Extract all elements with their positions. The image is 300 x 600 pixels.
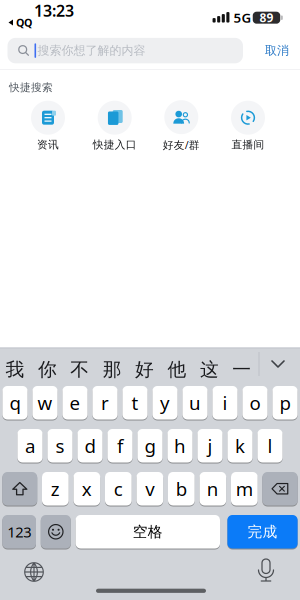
button[interactable]: 切换键盘: [23, 561, 45, 583]
button[interactable]: 他: [162, 354, 192, 384]
staticText: k: [235, 433, 245, 458]
button[interactable]: 返回 QQ: [5, 17, 35, 28]
button[interactable]: x: [73, 471, 100, 506]
button[interactable]: 你: [32, 354, 62, 384]
staticText: b: [176, 476, 187, 501]
staticText: 取消: [265, 43, 289, 58]
button[interactable]: 取消: [257, 40, 297, 62]
staticText: e: [69, 390, 80, 415]
button[interactable]: 这: [194, 354, 224, 384]
button[interactable]: r: [92, 385, 118, 420]
button[interactable]: n: [199, 471, 226, 506]
button[interactable]: p: [272, 385, 298, 420]
staticText: j: [207, 433, 212, 458]
staticText: o: [249, 390, 260, 415]
staticText: 你: [38, 358, 57, 381]
button[interactable]: d: [77, 428, 103, 463]
button[interactable]: l: [257, 428, 283, 463]
staticText: 一: [232, 358, 251, 381]
button[interactable]: a: [17, 428, 43, 463]
button[interactable]: 搜索: [7, 38, 243, 63]
staticText: 那: [103, 358, 122, 381]
button[interactable]: 空格: [76, 514, 220, 549]
button[interactable]: z: [42, 471, 69, 506]
staticText: m: [236, 476, 253, 501]
button[interactable]: 不: [65, 354, 95, 384]
button[interactable]: 听写: [254, 558, 277, 582]
staticText: q: [9, 390, 20, 415]
button[interactable]: b: [168, 471, 195, 506]
staticText: u: [189, 390, 201, 415]
button[interactable]: 表情: [41, 514, 71, 549]
staticText: r: [101, 390, 109, 415]
button[interactable]: Shift: [2, 471, 37, 506]
staticText: 不: [70, 358, 89, 381]
button[interactable]: k: [227, 428, 253, 463]
button[interactable]: t: [122, 385, 148, 420]
button[interactable]: 好友/群: [148, 101, 214, 150]
button[interactable]: 一: [227, 354, 257, 384]
button[interactable]: o: [242, 385, 268, 420]
staticText: f: [117, 433, 123, 458]
button[interactable]: e: [62, 385, 88, 420]
staticText: z: [51, 476, 60, 501]
button[interactable]: 123: [2, 514, 36, 549]
staticText: s: [55, 433, 64, 458]
button[interactable]: h: [167, 428, 193, 463]
button[interactable]: 删除: [262, 471, 298, 506]
staticText: 我: [5, 358, 24, 381]
staticText: c: [114, 476, 123, 501]
staticText: 资讯: [37, 138, 59, 151]
button[interactable]: 资讯: [15, 101, 81, 150]
button[interactable]: 快捷入口: [82, 101, 148, 150]
staticText: d: [84, 433, 95, 458]
staticText: g: [144, 433, 155, 458]
button[interactable]: w: [32, 385, 58, 420]
staticText: 快捷搜索: [9, 81, 53, 94]
staticText: w: [37, 390, 52, 415]
staticText: x: [82, 476, 92, 501]
button[interactable]: u: [182, 385, 208, 420]
button[interactable]: s: [47, 428, 73, 463]
button[interactable]: q: [2, 385, 28, 420]
staticText: p: [279, 390, 290, 415]
staticText: 搜索你想了解的内容: [38, 43, 146, 58]
staticText: a: [25, 433, 35, 458]
button[interactable]: c: [105, 471, 132, 506]
staticText: 123: [7, 522, 31, 541]
button[interactable]: 展开候选字: [265, 351, 291, 377]
staticText: n: [207, 476, 219, 501]
staticText: 89: [259, 10, 273, 26]
button[interactable]: 我: [0, 354, 30, 384]
staticText: l: [267, 433, 272, 458]
button[interactable]: f: [107, 428, 133, 463]
staticText: y: [160, 390, 170, 415]
staticText: 空格: [133, 523, 163, 541]
button[interactable]: 直播间: [215, 101, 281, 150]
staticText: 他: [167, 358, 186, 381]
staticText: 5G: [233, 9, 251, 26]
staticText: 好: [135, 358, 154, 381]
button[interactable]: m: [231, 471, 258, 506]
staticText: 直播间: [231, 138, 264, 151]
button[interactable]: g: [137, 428, 163, 463]
staticText: QQ: [16, 15, 32, 30]
staticText: t: [131, 390, 138, 415]
staticText: v: [145, 476, 154, 501]
button[interactable]: 那: [97, 354, 127, 384]
button[interactable]: j: [197, 428, 223, 463]
button[interactable]: y: [152, 385, 178, 420]
staticText: h: [174, 433, 186, 458]
staticText: i: [222, 390, 227, 415]
button[interactable]: 好: [130, 354, 160, 384]
staticText: 这: [200, 358, 219, 381]
button[interactable]: 完成: [227, 514, 298, 549]
staticText: 完成: [247, 523, 277, 541]
staticText: 13:23: [34, 0, 74, 21]
staticText: 快捷入口: [93, 138, 137, 151]
staticText: 好友/群: [163, 138, 200, 152]
button[interactable]: v: [136, 471, 163, 506]
button[interactable]: i: [212, 385, 238, 420]
